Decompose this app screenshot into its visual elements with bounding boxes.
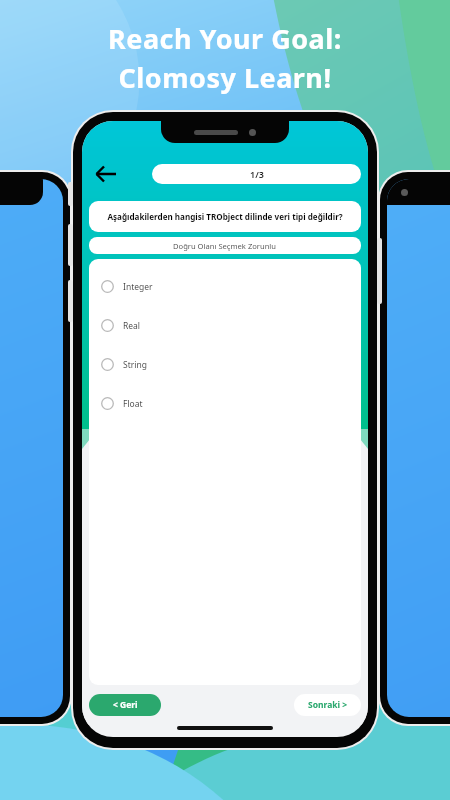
button[interactable]: < Geri <box>89 694 161 716</box>
staticText: Aşağıdakilerden hangisi TRObject dilinde… <box>107 211 343 222</box>
staticText: Clomosy Learn! <box>118 59 332 96</box>
staticText: String <box>123 359 147 371</box>
button[interactable]: String <box>89 345 361 384</box>
button[interactable]: Integer <box>89 267 361 306</box>
staticText: Doğru Olanı Seçmek Zorunlu <box>173 241 277 251</box>
staticText: 1/3 <box>250 168 264 180</box>
button[interactable]: 1/3 <box>152 164 361 184</box>
staticText: Real <box>123 320 141 332</box>
button[interactable]: Real <box>89 306 361 345</box>
staticText: Integer <box>123 281 153 293</box>
staticText: Reach Your Goal: <box>108 20 342 57</box>
button[interactable]: Float <box>89 384 361 423</box>
staticText: Sonraki > <box>308 699 348 711</box>
staticText: Float <box>123 398 143 410</box>
button[interactable]: Back <box>89 157 123 191</box>
button[interactable]: Sonraki > <box>294 694 361 716</box>
staticText: < Geri <box>113 699 138 711</box>
